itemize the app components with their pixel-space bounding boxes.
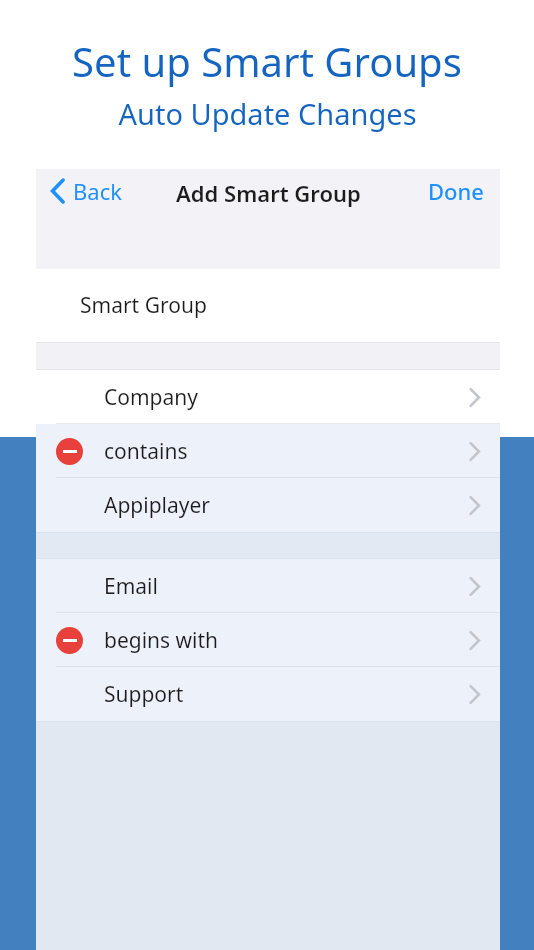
button[interactable]: Smart Group — [36, 269, 500, 342]
button[interactable]: Back — [36, 169, 500, 213]
button[interactable]: Remove condition — [36, 613, 500, 667]
button[interactable]: Done — [412, 169, 500, 213]
staticText: Smart Group — [80, 291, 207, 320]
staticText: contains — [104, 437, 188, 466]
button[interactable]: Appiplayer — [36, 478, 500, 532]
staticText: begins with — [104, 626, 219, 655]
staticText: Back — [73, 176, 122, 206]
button[interactable]: Email — [36, 559, 500, 613]
staticText: Email — [104, 572, 158, 601]
staticText: Company — [104, 383, 198, 412]
button[interactable]: Company — [36, 370, 500, 424]
staticText: Add Smart Group — [176, 178, 361, 208]
other: Remove condition — [56, 438, 83, 465]
button[interactable]: Support — [36, 667, 500, 721]
staticText: Set up Smart Groups — [72, 34, 462, 88]
button[interactable]: Remove condition — [36, 424, 500, 478]
staticText: Support — [104, 680, 184, 709]
other: Remove condition — [56, 627, 83, 654]
staticText: Auto Update Changes — [118, 94, 417, 133]
staticText: Appiplayer — [104, 491, 211, 520]
staticText: Done — [428, 176, 484, 206]
